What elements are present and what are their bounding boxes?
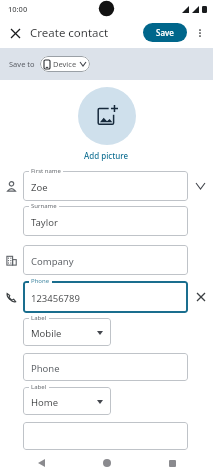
staticText: Label bbox=[31, 383, 47, 391]
button[interactable]: Device bbox=[40, 56, 90, 72]
button[interactable]: Clear phone bbox=[188, 281, 213, 313]
button[interactable]: Expand name fields bbox=[188, 171, 213, 201]
staticText: Save bbox=[156, 27, 174, 38]
button[interactable]: Add picture bbox=[78, 87, 136, 145]
staticText: Create contact bbox=[30, 25, 109, 41]
button[interactable]: Save bbox=[143, 23, 187, 42]
button[interactable]: Taylor bbox=[23, 206, 188, 236]
staticText: Surname bbox=[31, 202, 57, 210]
button[interactable]: More options bbox=[190, 23, 210, 43]
staticText: Phone bbox=[31, 277, 50, 285]
staticText: Company bbox=[31, 255, 74, 268]
staticText: Home bbox=[31, 396, 59, 409]
staticText: Phone bbox=[31, 362, 60, 375]
button[interactable]: Recent apps bbox=[161, 452, 183, 474]
staticText: First name bbox=[31, 167, 61, 175]
button[interactable]: Add picture bbox=[84, 150, 129, 161]
button[interactable]: Home bbox=[96, 452, 118, 474]
staticText: Device bbox=[53, 59, 77, 69]
staticText: 123456789 bbox=[31, 292, 80, 305]
button[interactable]: Phone bbox=[23, 353, 188, 381]
button[interactable]: Home bbox=[23, 387, 111, 415]
button[interactable]: Back bbox=[30, 452, 52, 474]
button[interactable]: Zoe bbox=[23, 171, 188, 201]
button[interactable]: Close bbox=[5, 23, 25, 43]
button[interactable]: 123456789 bbox=[23, 281, 188, 313]
staticText: Label bbox=[31, 314, 47, 322]
button[interactable]: Company bbox=[23, 245, 188, 275]
staticText: Mobile bbox=[31, 327, 62, 340]
staticText: Zoe bbox=[31, 181, 48, 194]
button[interactable] bbox=[23, 422, 188, 450]
staticText: Save to bbox=[9, 59, 35, 69]
staticText: 10:00 bbox=[8, 4, 28, 14]
button[interactable]: Mobile bbox=[23, 318, 111, 346]
staticText: Taylor bbox=[31, 216, 58, 229]
